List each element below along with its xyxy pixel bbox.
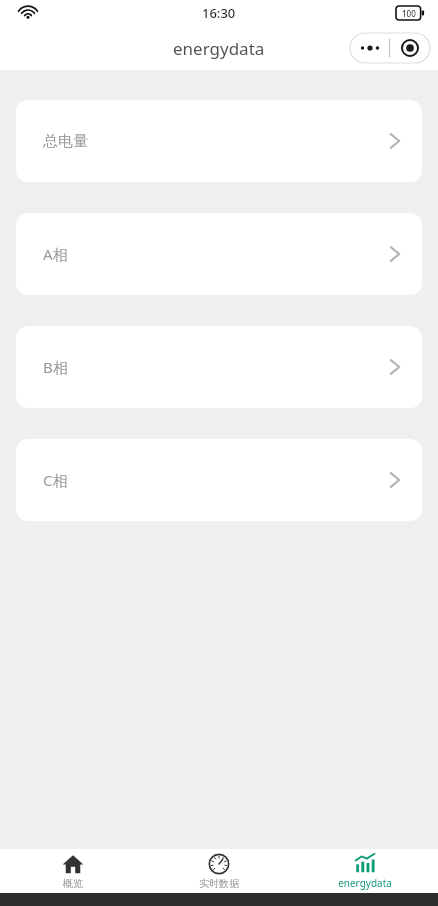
staticText: 100	[402, 8, 416, 19]
staticText: energydata	[173, 37, 265, 60]
button[interactable]: B相	[16, 326, 422, 408]
staticText: energydata	[338, 876, 392, 890]
staticText: 实时数据	[199, 877, 239, 890]
button[interactable]: 实时数据	[146, 849, 292, 893]
staticText: C相	[43, 470, 68, 490]
button[interactable]: 概览	[0, 849, 146, 893]
button[interactable]: A相	[16, 213, 422, 295]
staticText: 总电量	[43, 132, 88, 151]
button[interactable]: 总电量	[16, 100, 422, 182]
staticText: 16:30	[202, 4, 236, 22]
button[interactable]: Close	[390, 33, 430, 63]
button[interactable]: C相	[16, 439, 422, 521]
staticText: B相	[43, 357, 68, 377]
staticText: 概览	[63, 877, 83, 890]
staticText: A相	[43, 244, 68, 264]
button[interactable]: energydata	[292, 849, 438, 893]
button[interactable]: More	[350, 33, 389, 63]
